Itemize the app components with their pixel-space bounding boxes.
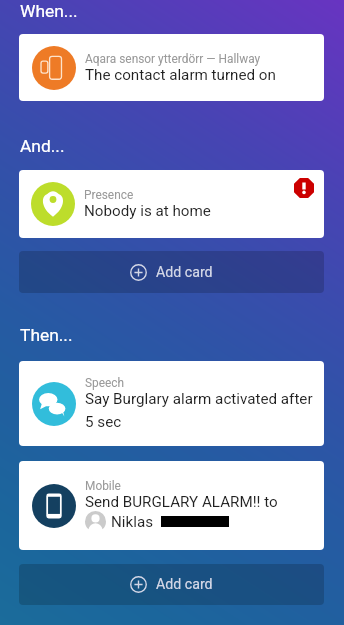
staticText: When... — [20, 1, 78, 21]
staticText: Say Burglary alarm activated after 5 sec — [85, 390, 324, 431]
staticText: Mobile — [85, 479, 121, 493]
staticText: Send BURGLARY ALARM!! to — [85, 493, 278, 511]
button[interactable]: Add card — [19, 251, 324, 293]
staticText: Nobody is at home — [84, 202, 211, 220]
button[interactable]: Presence — [19, 170, 324, 238]
staticText: Niklas — [111, 513, 154, 531]
staticText: And... — [20, 136, 65, 156]
staticText: Presence — [84, 188, 134, 202]
button[interactable]: Aqara sensor ytterdörr — Hallway — [19, 34, 324, 101]
staticText: Then... — [20, 325, 73, 345]
staticText: Aqara sensor ytterdörr — Hallway — [85, 52, 261, 66]
other: Error — [294, 178, 314, 198]
button[interactable]: Speech — [19, 361, 324, 446]
staticText: Speech — [85, 376, 125, 390]
staticText: Add card — [156, 576, 213, 593]
staticText: Add card — [156, 264, 213, 281]
button[interactable]: Add card — [19, 564, 324, 605]
button[interactable]: Mobile — [19, 461, 324, 550]
staticText: The contact alarm turned on — [85, 66, 276, 84]
